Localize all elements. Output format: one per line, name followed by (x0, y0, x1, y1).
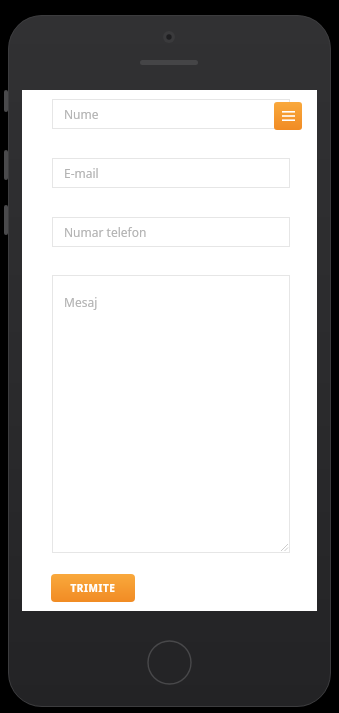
staticText: Nume (64, 106, 99, 122)
staticText: E-mail (64, 165, 99, 181)
button[interactable]: E-mail (52, 158, 290, 188)
button[interactable]: TRIMITE (51, 574, 135, 602)
button[interactable]: Nume (52, 99, 290, 129)
button[interactable]: Menu (274, 102, 302, 130)
button[interactable]: Mesaj (52, 275, 290, 553)
button[interactable]: Numar telefon (52, 217, 290, 247)
staticText: TRIMITE (70, 581, 116, 595)
staticText: Numar telefon (64, 224, 147, 240)
staticText: Mesaj (64, 294, 98, 310)
